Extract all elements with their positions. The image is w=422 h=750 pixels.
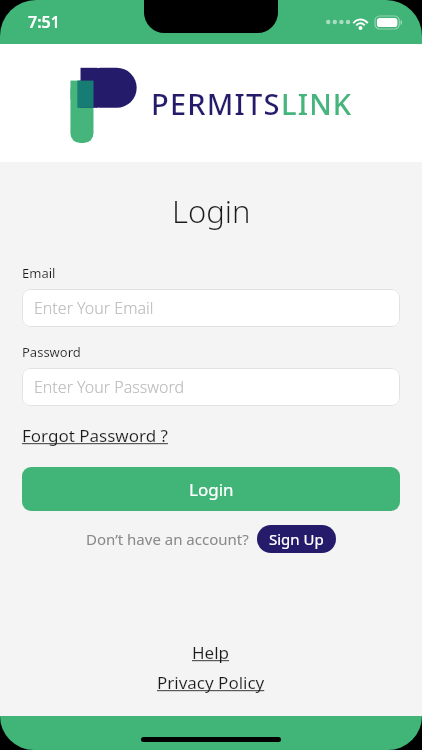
staticText: LINK bbox=[281, 84, 353, 123]
button[interactable]: Help bbox=[192, 641, 230, 664]
staticText: Don’t have an account? bbox=[86, 529, 249, 549]
button[interactable]: Forgot Password ? bbox=[22, 424, 168, 447]
button[interactable]: Enter Your Email bbox=[22, 289, 400, 327]
staticText: Login bbox=[189, 478, 234, 501]
staticText: Sign Up bbox=[269, 529, 324, 549]
staticText: Privacy Policy bbox=[157, 671, 265, 694]
button[interactable]: Login bbox=[22, 467, 400, 511]
button[interactable]: Sign Up bbox=[257, 525, 336, 553]
button[interactable]: Privacy Policy bbox=[157, 671, 265, 694]
staticText: Forgot Password ? bbox=[22, 424, 168, 447]
staticText: Password bbox=[22, 343, 81, 361]
staticText: Help bbox=[192, 641, 230, 664]
staticText: Email bbox=[22, 264, 56, 282]
staticText: PERMITS bbox=[151, 84, 281, 123]
staticText: Enter Your Email bbox=[34, 297, 154, 319]
button[interactable]: Enter Your Password bbox=[22, 368, 400, 406]
staticText: 7:51 bbox=[28, 11, 60, 33]
staticText: Enter Your Password bbox=[34, 376, 185, 398]
staticText: Login bbox=[172, 190, 251, 232]
